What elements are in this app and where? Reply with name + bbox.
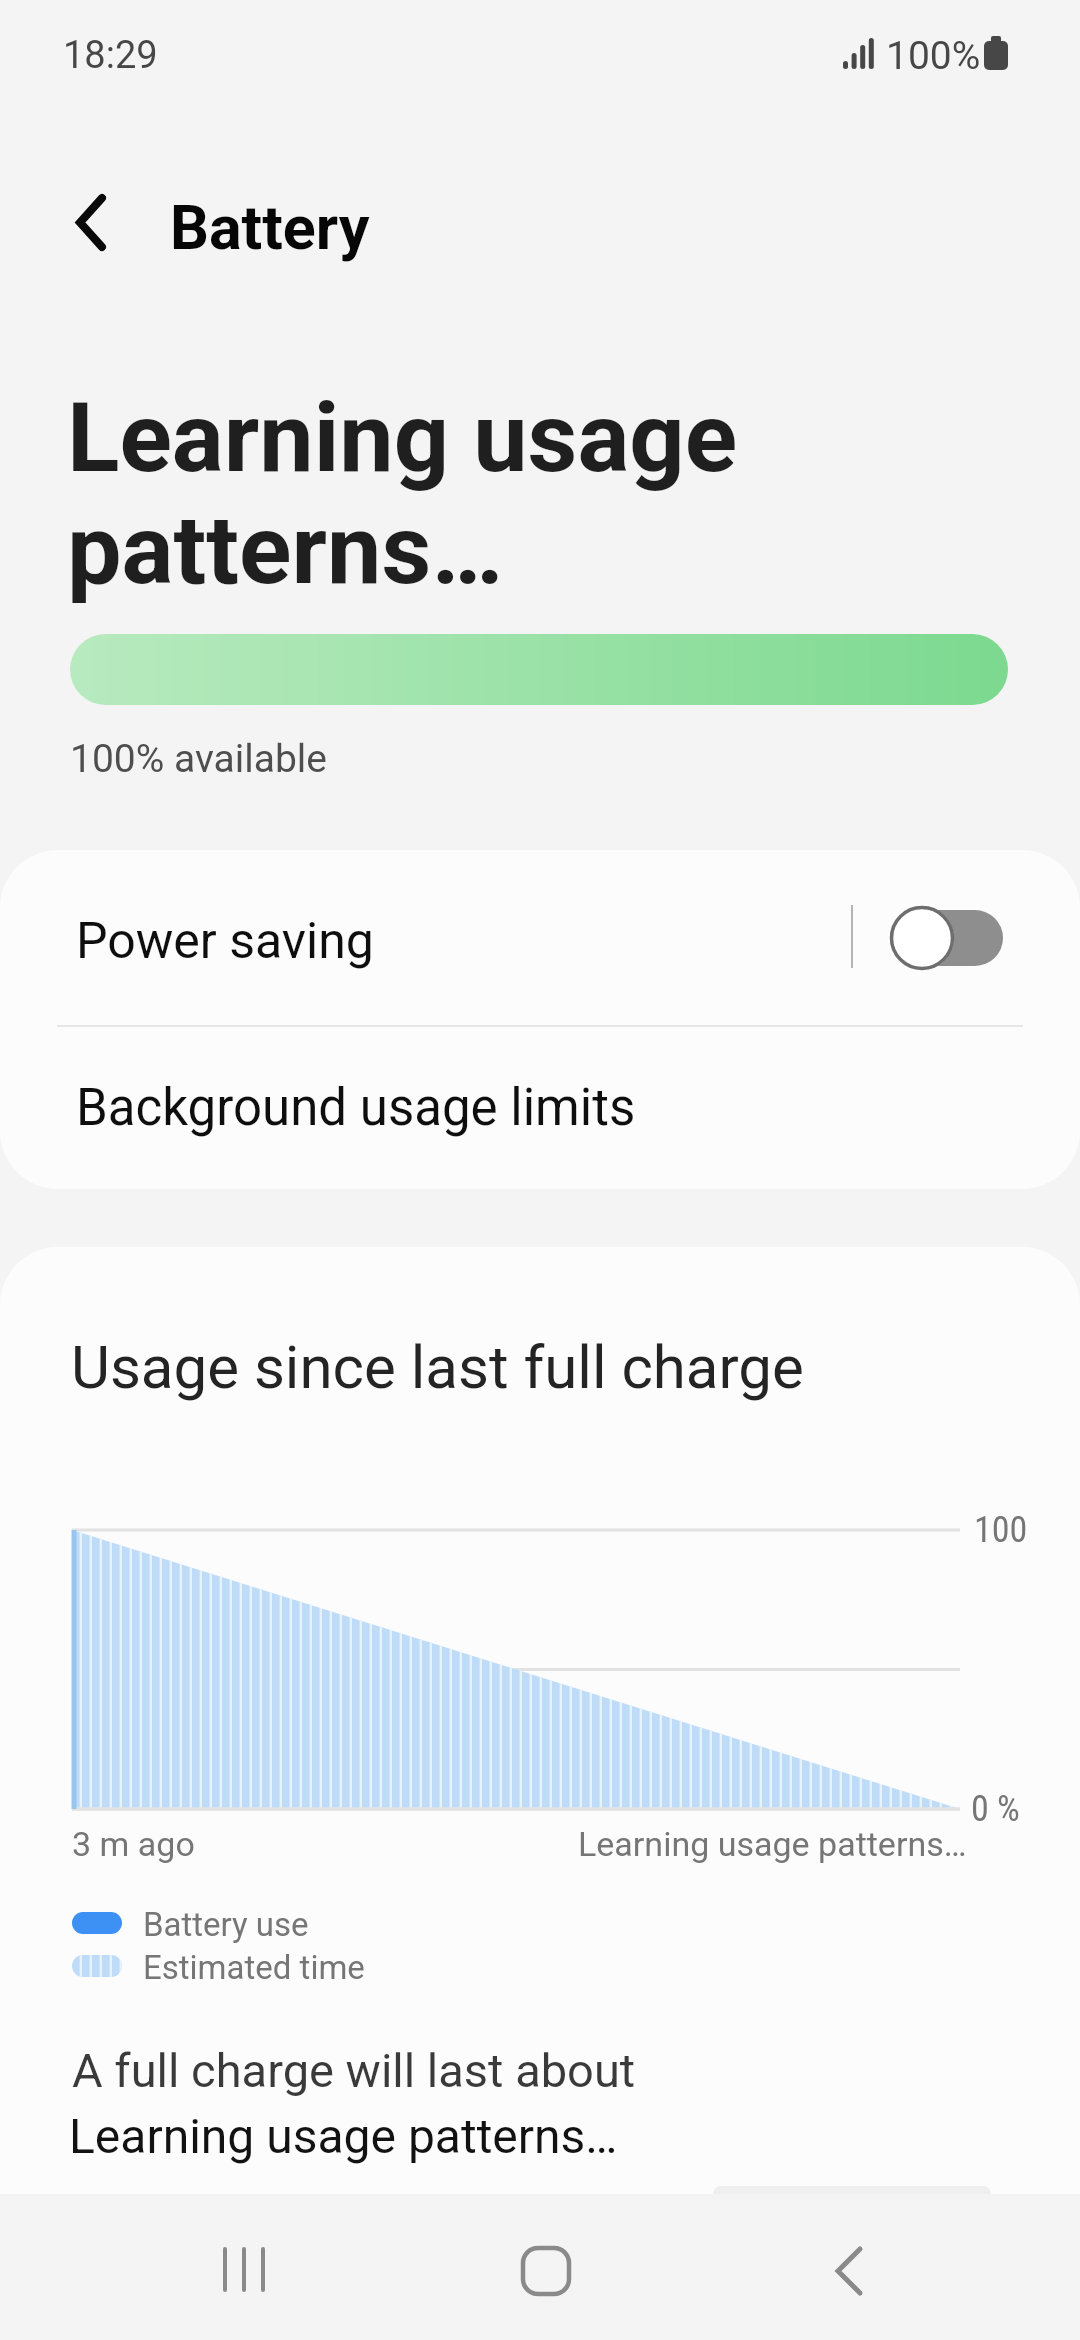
staticText: Learning usage patterns…: [69, 2108, 618, 2164]
staticText: 3 m ago: [72, 1824, 195, 1864]
staticText: 100% available: [70, 736, 327, 782]
button[interactable]: Home: [486, 2221, 606, 2340]
staticText: Background usage limits: [76, 1078, 636, 1138]
staticText: Estimated time: [143, 1948, 365, 1987]
staticText: Learning usage patterns…: [578, 1824, 967, 1864]
button[interactable]: Power saving switch, off: [884, 899, 1009, 977]
staticText: A full charge will last about: [72, 2043, 636, 2098]
button[interactable]: Background usage limits: [0, 1027, 1080, 1189]
staticText: 0 %: [971, 1788, 1020, 1830]
staticText: Usage since last full charge: [71, 1332, 804, 1402]
staticText: Battery: [170, 192, 370, 263]
staticText: Learning usage patterns…: [67, 381, 887, 606]
button[interactable]: Navigate up: [50, 182, 136, 268]
staticText: Power saving: [76, 912, 374, 971]
button[interactable]: Power saving: [0, 850, 1080, 1026]
button[interactable]: Recent apps: [183, 2221, 303, 2340]
staticText: 18:29: [63, 33, 158, 78]
staticText: 100%: [886, 33, 981, 79]
button[interactable]: More options: [845, 905, 859, 968]
button[interactable]: Back: [789, 2221, 909, 2340]
staticText: Battery use: [143, 1905, 309, 1944]
staticText: 100: [974, 1509, 1028, 1551]
